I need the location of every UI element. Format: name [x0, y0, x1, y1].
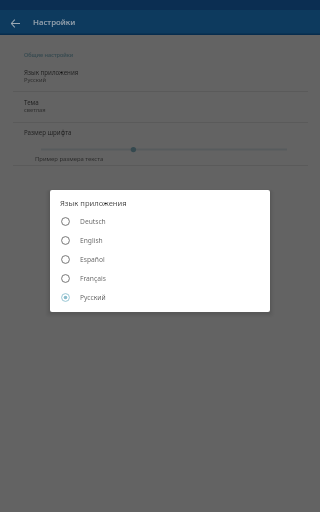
button[interactable]: Размер шрифта	[0, 124, 320, 164]
button[interactable]: Русский	[50, 288, 270, 307]
staticText: English	[80, 236, 103, 245]
staticText: Размер шрифта	[24, 128, 72, 136]
staticText: Тема	[24, 98, 39, 106]
staticText: Français	[80, 274, 106, 283]
staticText: Язык приложения	[60, 198, 127, 208]
staticText: светлая	[24, 106, 46, 114]
staticText: Настройки	[33, 17, 76, 28]
staticText: Español	[80, 255, 105, 264]
button[interactable]: Тема	[0, 94, 320, 121]
staticText: Русский	[80, 293, 106, 302]
staticText: Общие настройки	[24, 51, 74, 59]
staticText: Язык приложения	[24, 68, 79, 76]
staticText: Пример размера текста	[35, 155, 104, 163]
button[interactable]: Español	[50, 250, 270, 269]
button[interactable]: Язык приложения	[0, 64, 320, 91]
button[interactable]: Français	[50, 269, 270, 288]
staticText: Русский	[24, 76, 47, 84]
button[interactable]: English	[50, 231, 270, 250]
button[interactable]: Deutsch	[50, 212, 270, 231]
staticText: Deutsch	[80, 217, 106, 226]
button[interactable]: Back	[4, 12, 26, 34]
